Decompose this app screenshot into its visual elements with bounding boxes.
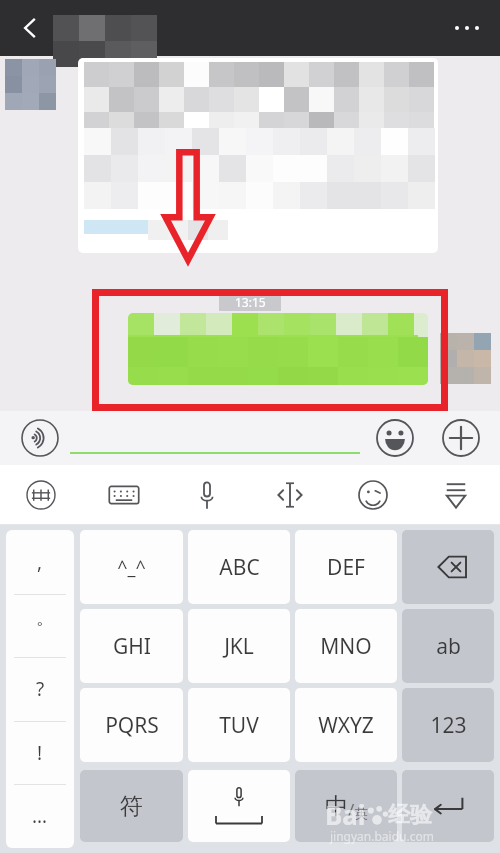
button[interactable]: Back (6, 4, 54, 52)
staticText: TUV (219, 711, 259, 740)
staticText: MNO (320, 632, 372, 661)
staticText: ^_^ (117, 555, 146, 580)
button[interactable]: 中 (295, 770, 397, 842)
staticText: 符 (120, 792, 143, 821)
staticText: GHI (113, 632, 151, 661)
button[interactable]: Space (188, 770, 290, 842)
staticText: ? (36, 676, 45, 702)
button[interactable] (70, 419, 360, 457)
button[interactable]: MNO (295, 609, 397, 683)
button[interactable]: Emoji (375, 418, 415, 458)
button[interactable]: , (6, 530, 74, 594)
button[interactable]: ^_^ (80, 530, 183, 604)
button[interactable]: 符 (80, 770, 183, 842)
button[interactable]: ! (6, 721, 74, 785)
staticText: PQRS (105, 711, 159, 740)
staticText: 经验 (388, 801, 432, 829)
button[interactable]: Keyboard layout (104, 477, 144, 513)
staticText: DEF (327, 553, 365, 582)
staticText: 英 (355, 805, 368, 821)
button[interactable]: GHI (80, 609, 183, 683)
staticText: / (348, 798, 355, 821)
button[interactable]: TUV (188, 688, 290, 762)
button[interactable]: ab (402, 609, 494, 683)
button[interactable]: DEF (295, 530, 397, 604)
staticText: … (32, 803, 48, 829)
button[interactable]: 123 (402, 688, 494, 762)
staticText: 中 (325, 792, 348, 821)
button[interactable]: Emoticons (355, 477, 391, 513)
staticText: ab (436, 632, 461, 661)
button[interactable]: WXYZ (295, 688, 397, 762)
staticText: ! (37, 740, 43, 766)
staticText: jingyan.baidu.com (330, 828, 434, 844)
staticText: WXYZ (318, 711, 374, 740)
button[interactable]: iFlytek input method (23, 477, 59, 513)
button[interactable]: ? (6, 657, 74, 721)
button[interactable]: Voice typing (189, 476, 225, 514)
button[interactable]: Voice input (20, 418, 60, 458)
button[interactable]: Move cursor (270, 477, 310, 513)
button[interactable]: PQRS (80, 688, 183, 762)
button[interactable]: ABC (188, 530, 290, 604)
button[interactable] (78, 58, 438, 253)
staticText: JKL (224, 632, 254, 661)
button[interactable]: ° (6, 594, 74, 658)
button[interactable]: Hide keyboard (438, 477, 474, 513)
button[interactable] (128, 313, 428, 385)
button[interactable]: More functions (441, 418, 481, 458)
staticText: , (37, 549, 43, 575)
button[interactable]: Backspace (402, 530, 494, 604)
staticText: ° (37, 617, 43, 635)
button[interactable]: More options (444, 5, 490, 51)
staticText: 123 (430, 711, 467, 740)
button[interactable]: JKL (188, 609, 290, 683)
staticText: ABC (219, 553, 260, 582)
staticText: 13:15 (235, 294, 266, 310)
staticText: Bai (325, 797, 366, 832)
button[interactable]: Enter (402, 770, 494, 842)
button[interactable]: … (6, 784, 74, 848)
